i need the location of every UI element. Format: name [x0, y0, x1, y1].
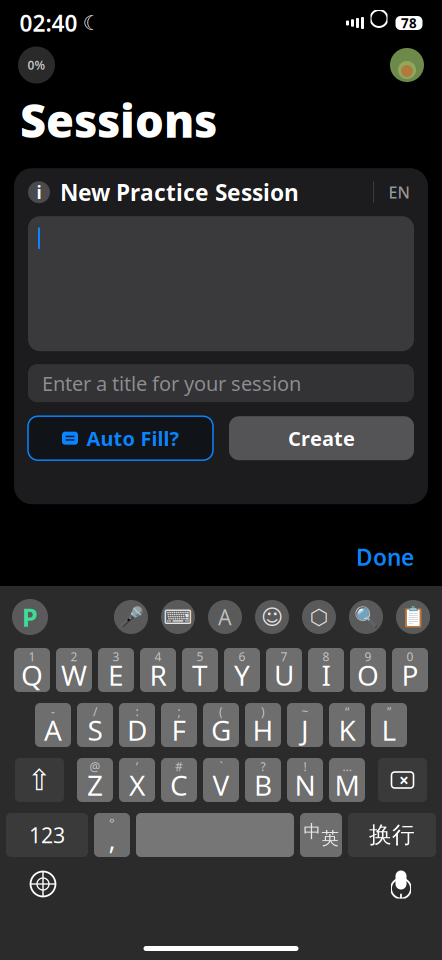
staticText: - — [51, 703, 55, 719]
button[interactable]: ” — [371, 703, 407, 747]
staticText: P — [401, 656, 418, 694]
button[interactable]: 2 — [56, 648, 92, 692]
staticText: 4 — [154, 648, 161, 664]
button[interactable]: Comma — [94, 813, 130, 857]
staticText: A — [44, 711, 62, 749]
staticText: / — [93, 703, 97, 719]
button[interactable]: ? — [245, 758, 281, 802]
staticText: Enter a title for your session — [42, 370, 301, 396]
staticText: 6 — [238, 648, 245, 664]
staticText: 5 — [196, 648, 203, 664]
button[interactable]: Search — [349, 600, 383, 634]
button[interactable]: Shift — [15, 758, 64, 802]
staticText: X — [129, 766, 145, 804]
staticText: G — [211, 711, 231, 749]
staticText: ☾ — [82, 12, 100, 34]
button[interactable]: Text formatting — [208, 600, 242, 634]
button[interactable]: 5 — [182, 648, 218, 692]
button[interactable]: Clipboard — [396, 600, 430, 634]
button[interactable]: ! — [287, 758, 323, 802]
staticText: 02:40 — [19, 8, 77, 38]
staticText: , — [108, 821, 115, 857]
button[interactable]: 6 — [224, 648, 260, 692]
button[interactable]: ~ — [287, 703, 323, 747]
staticText: S — [87, 711, 102, 749]
staticText: ) — [261, 703, 265, 719]
staticText: Y — [234, 656, 250, 694]
staticText: EN — [388, 182, 409, 203]
button[interactable]: Switch Chinese English — [300, 813, 342, 857]
staticText: K — [338, 711, 355, 749]
button[interactable]: 4 — [140, 648, 176, 692]
staticText: 中 — [303, 821, 320, 842]
button[interactable]: Done — [342, 536, 428, 578]
button[interactable]: # — [161, 758, 197, 802]
button[interactable]: Progress 0 percent — [18, 46, 55, 83]
button[interactable]: … — [329, 758, 365, 802]
button[interactable]: Dictation — [386, 867, 416, 901]
staticText: ; — [177, 703, 180, 719]
staticText: 3 — [112, 648, 119, 664]
staticText: ⬡ — [309, 605, 328, 629]
button[interactable]: 123 — [6, 813, 88, 857]
button[interactable]: ’ — [119, 758, 155, 802]
staticText: 换行 — [369, 821, 415, 849]
button[interactable]: - — [35, 703, 71, 747]
button[interactable]: : — [119, 703, 155, 747]
button[interactable]: ; — [161, 703, 197, 747]
staticText: N — [294, 766, 315, 804]
button[interactable]: 0 — [392, 648, 428, 692]
button[interactable]: 9 — [350, 648, 386, 692]
staticText: U — [274, 656, 294, 694]
button[interactable]: 8 — [308, 648, 344, 692]
staticText: ⌨ — [163, 606, 192, 628]
button[interactable]: Return — [348, 813, 436, 857]
staticText: 0% — [27, 57, 45, 73]
staticText: 🔍 — [353, 606, 378, 628]
button[interactable]: “ — [329, 703, 365, 747]
staticText: ! — [303, 758, 306, 774]
staticText: L — [381, 711, 396, 749]
button[interactable]: Create — [229, 416, 414, 460]
staticText: W — [61, 656, 87, 694]
button[interactable]: Stickers — [255, 600, 289, 634]
staticText: ’ — [136, 758, 138, 774]
button[interactable]: 3 — [98, 648, 134, 692]
button[interactable]: Space — [136, 813, 294, 857]
staticText: Done — [356, 542, 414, 572]
staticText: i — [36, 181, 41, 204]
button[interactable]: 1 — [14, 648, 50, 692]
staticText: Z — [87, 766, 103, 804]
staticText: Q — [21, 656, 43, 694]
staticText: 123 — [29, 821, 65, 849]
staticText: @ — [89, 758, 100, 774]
button[interactable]: 7 — [266, 648, 302, 692]
staticText: D — [127, 711, 147, 749]
staticText: 0 — [406, 648, 413, 664]
button[interactable]: ` — [203, 758, 239, 802]
button[interactable]: Auto Fill? — [28, 416, 213, 460]
button[interactable]: Delete — [378, 758, 427, 802]
staticText: × — [399, 768, 409, 791]
button[interactable]: Enter a title for your session — [28, 364, 414, 402]
button[interactable]: Dictation — [114, 600, 148, 634]
staticText: 8 — [322, 648, 329, 664]
button[interactable]: @ — [77, 758, 113, 802]
button[interactable]: Next keyboard — [26, 867, 60, 901]
button[interactable]: Input method — [12, 599, 48, 635]
staticText: H — [252, 711, 273, 749]
staticText: 1 — [28, 648, 35, 664]
staticText: 7 — [280, 648, 287, 664]
button[interactable]: ) — [245, 703, 281, 747]
button[interactable]: Profile — [390, 48, 424, 82]
staticText: Auto Fill? — [86, 425, 179, 451]
staticText: 英 — [321, 828, 338, 849]
staticText: : — [135, 703, 138, 719]
staticText: M — [334, 766, 359, 804]
button[interactable]: / — [77, 703, 113, 747]
staticText: ☺ — [261, 605, 283, 629]
button[interactable]: ( — [203, 703, 239, 747]
staticText: ⇧ — [27, 763, 52, 797]
button[interactable]: Objects — [302, 600, 336, 634]
button[interactable]: Keyboard — [161, 600, 195, 634]
